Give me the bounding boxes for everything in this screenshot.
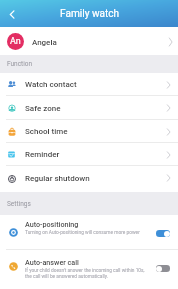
staticText: the call will be answered automatically. (25, 274, 109, 280)
staticText: Angela (32, 38, 57, 47)
staticText: Auto-answer call (25, 258, 79, 266)
button[interactable]: An (0, 27, 178, 55)
button[interactable]: Safe zone (0, 96, 178, 120)
staticText: Safe zone (25, 104, 61, 113)
button[interactable]: Regular shutdown (0, 165, 178, 191)
staticText: Regular shutdown (25, 174, 90, 183)
staticText: Reminder (25, 150, 60, 159)
staticText: Function (7, 60, 33, 68)
button[interactable]: Watch contact (0, 73, 178, 96)
button[interactable]: School time (0, 120, 178, 143)
staticText: Watch contact (25, 80, 77, 89)
button[interactable]: Auto-answer call (0, 250, 178, 289)
button[interactable]: Toggle on (156, 230, 170, 237)
staticText: Settings (7, 200, 31, 208)
button[interactable]: Back (0, 0, 22, 27)
staticText: An (10, 36, 21, 47)
staticText: If your child doesn't answer the incomin… (25, 268, 145, 274)
button[interactable]: Reminder (0, 143, 178, 166)
staticText: Turning on Auto-positioning will consume… (25, 230, 140, 236)
button[interactable]: Toggle off (156, 265, 170, 272)
button[interactable]: Auto-positioning (0, 215, 178, 250)
staticText: School time (25, 127, 68, 136)
staticText: Auto-positioning (25, 220, 79, 228)
staticText: Family watch (60, 8, 120, 20)
